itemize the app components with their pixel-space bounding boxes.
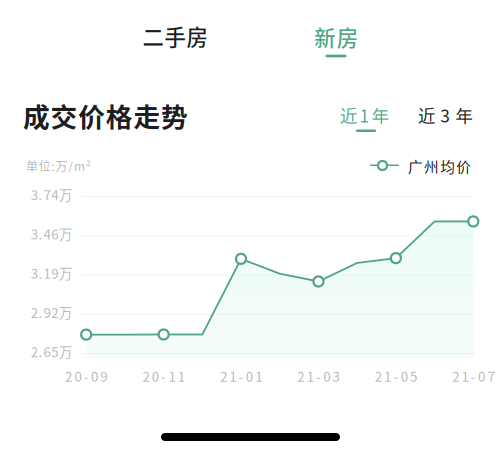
staticText: 均 — [440, 155, 455, 177]
staticText: 手 — [164, 21, 185, 51]
staticText: 21-05 — [375, 366, 417, 386]
button[interactable]: 新 — [276, 16, 396, 60]
staticText: 1 — [359, 102, 369, 128]
staticText: 20-11 — [142, 366, 185, 386]
staticText: 21-01 — [220, 366, 262, 386]
staticText: 年 — [455, 102, 472, 128]
staticText: 新 — [314, 21, 335, 52]
staticText: 2.65万 — [31, 342, 72, 361]
staticText: 近 — [340, 102, 357, 128]
staticText: 广 — [408, 155, 423, 177]
staticText: 年 — [372, 102, 389, 128]
staticText: 3.19万 — [31, 263, 72, 283]
staticText: 3 — [440, 102, 450, 128]
button[interactable]: 成交价格走势 — [23, 96, 188, 135]
staticText: 20-09 — [65, 366, 107, 386]
staticText: 3.74万 — [31, 185, 72, 204]
staticText: 单位:万/m² — [26, 157, 91, 174]
staticText: 近 — [418, 102, 435, 128]
staticText: 2.92万 — [31, 303, 72, 322]
staticText: 21-07 — [452, 366, 494, 386]
staticText: 成交价格走势 — [23, 96, 188, 135]
staticText: 价 — [456, 155, 471, 177]
staticText: 二 — [143, 21, 164, 51]
staticText: 房 — [186, 21, 207, 51]
button[interactable]: 二 — [95, 14, 255, 58]
staticText: 州 — [424, 155, 439, 177]
button[interactable]: 近 — [418, 106, 476, 124]
staticText: 21-03 — [297, 366, 340, 386]
staticText: 3.46万 — [31, 224, 72, 243]
staticText: 房 — [337, 21, 358, 52]
button[interactable]: 近 — [340, 106, 398, 140]
